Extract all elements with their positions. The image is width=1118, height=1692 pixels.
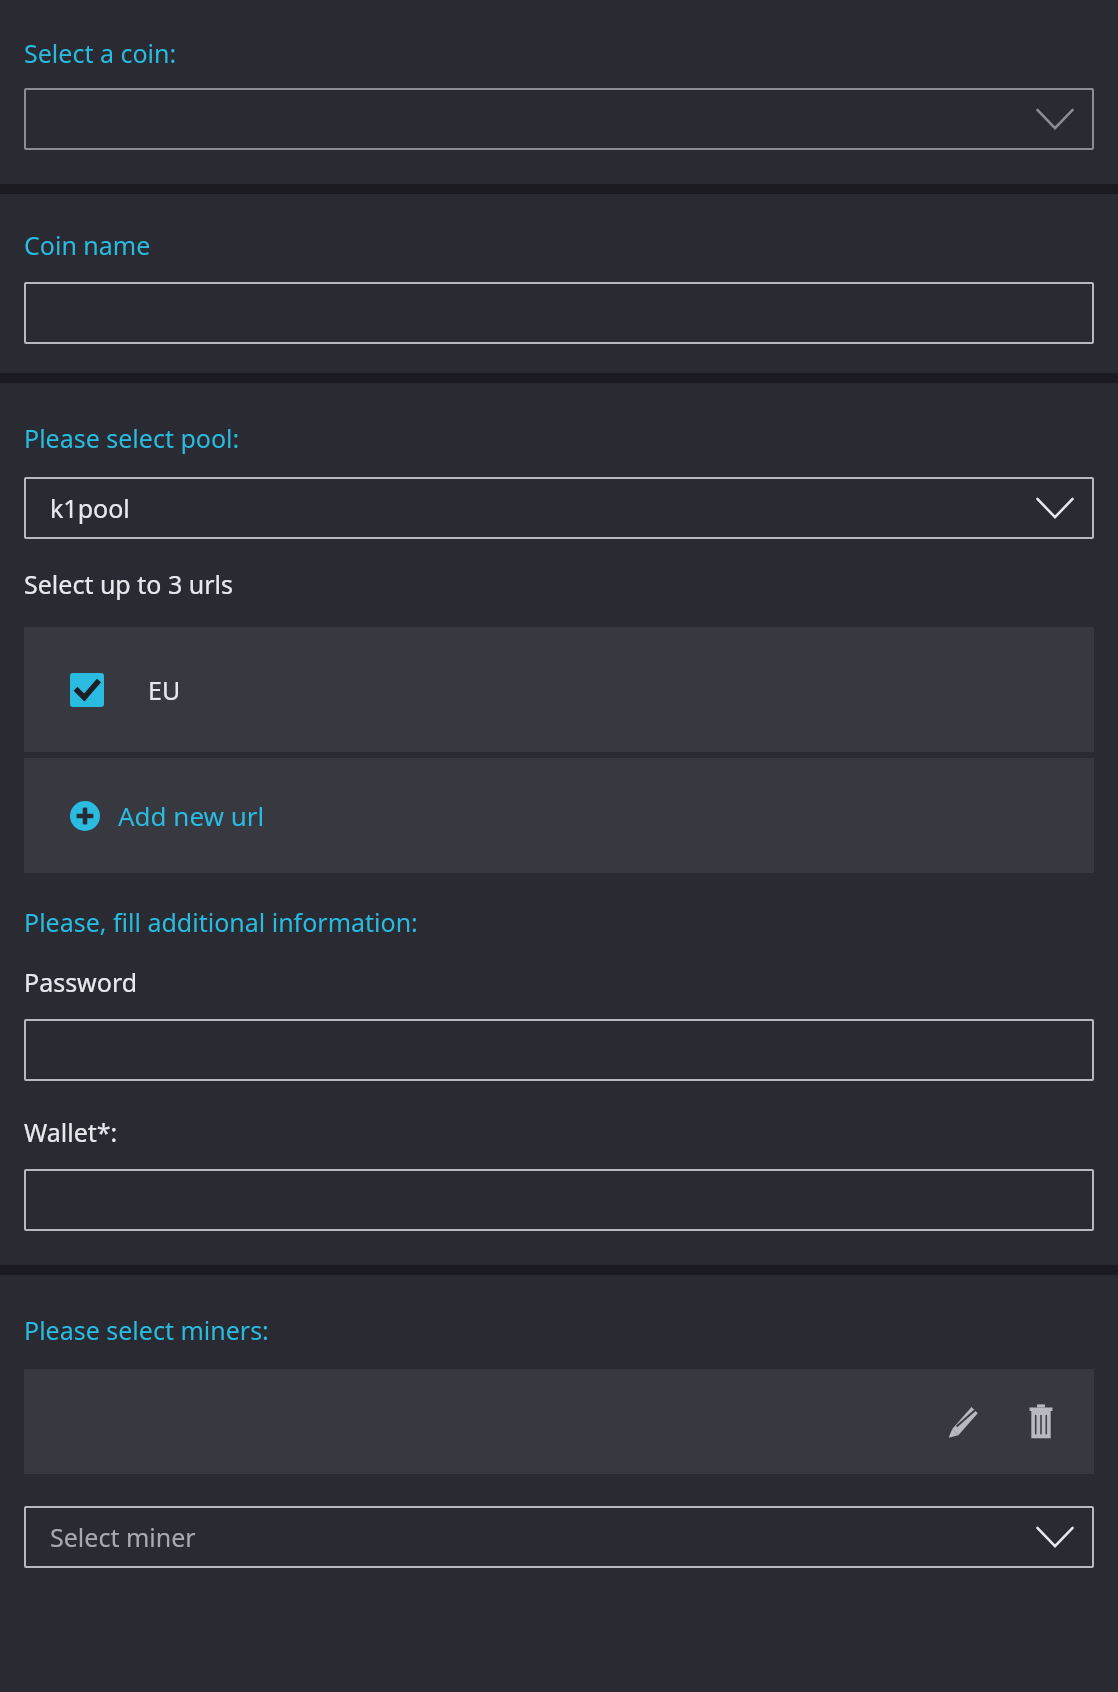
staticText: Password (24, 965, 138, 999)
button[interactable]: Wallet (24, 1169, 1094, 1231)
button[interactable]: Add new url (24, 758, 1094, 873)
staticText: Select a coin: (24, 36, 177, 70)
staticText: Select miner (50, 1520, 196, 1554)
button[interactable]: EU (24, 627, 1094, 752)
staticText: Please, fill additional information: (24, 905, 418, 939)
staticText: Please select pool: (24, 421, 240, 455)
staticText: Select up to 3 urls (24, 567, 233, 601)
button[interactable]: Edit miner (932, 1393, 990, 1451)
button[interactable]: Select a coin (24, 88, 1094, 150)
button[interactable]: Password (24, 1019, 1094, 1081)
button[interactable]: Delete miner (1012, 1393, 1070, 1451)
staticText: k1pool (50, 491, 130, 525)
staticText: Please select miners: (24, 1313, 269, 1347)
staticText: Wallet*: (24, 1115, 118, 1149)
staticText: Coin name (24, 228, 151, 262)
button[interactable]: Select miner (24, 1506, 1094, 1568)
button[interactable]: Please select pool (24, 477, 1094, 539)
staticText: Add new url (118, 798, 265, 833)
button[interactable]: Coin name (24, 282, 1094, 344)
staticText: EU (148, 673, 181, 707)
